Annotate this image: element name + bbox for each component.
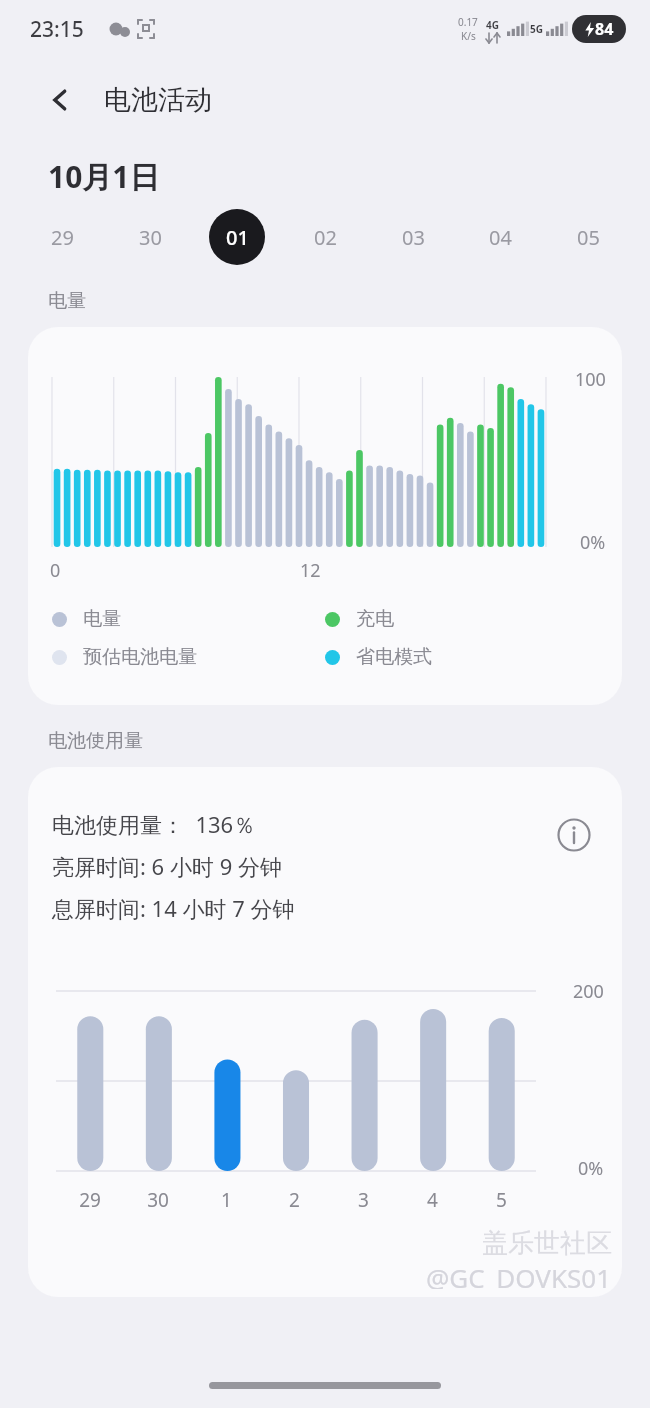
staticText: 01 xyxy=(226,224,249,251)
button[interactable]: 02 xyxy=(297,209,353,265)
button[interactable]: 信息 xyxy=(550,811,598,859)
staticText: 息屏时间: 14 小时 7 分钟 xyxy=(52,893,295,923)
staticText: 电池活动 xyxy=(104,83,212,117)
staticText: 充电 xyxy=(356,607,394,631)
staticText: 10月1日 xyxy=(48,156,160,197)
staticText: 04 xyxy=(489,224,512,251)
button[interactable]: 29 xyxy=(34,209,90,265)
staticText: 29 xyxy=(79,1187,101,1213)
button[interactable]: 05 xyxy=(560,209,616,265)
button[interactable]: 返回 xyxy=(34,74,86,126)
staticText: 0% xyxy=(578,1156,604,1181)
staticText: 预估电池电量 xyxy=(83,645,197,669)
staticText: 30 xyxy=(147,1187,169,1213)
staticText: 盖乐世社区 xyxy=(482,1227,612,1260)
button[interactable]: 01 xyxy=(209,209,265,265)
staticText: 05 xyxy=(577,224,600,251)
staticText: 5G xyxy=(530,22,543,36)
staticText: 03 xyxy=(402,224,425,251)
staticText: @GC_DOVKS01 xyxy=(426,1260,612,1289)
staticText: 电池使用量 xyxy=(48,729,143,753)
staticText: 30 xyxy=(139,224,162,251)
staticText: 0 xyxy=(50,558,61,583)
staticText: 电量 xyxy=(48,289,86,313)
staticText: 亮屏时间: 6 小时 9 分钟 xyxy=(52,851,282,881)
staticText: 0% xyxy=(580,530,606,555)
button[interactable]: 30 xyxy=(122,209,178,265)
staticText: 3 xyxy=(358,1187,369,1213)
button[interactable]: 电池使用量： 136％ xyxy=(28,767,622,1297)
staticText: K/s xyxy=(461,29,476,43)
staticText: 100 xyxy=(575,367,606,392)
button[interactable]: 04 xyxy=(472,209,528,265)
staticText: 02 xyxy=(314,224,337,251)
staticText: 84 xyxy=(595,18,614,40)
button[interactable]: 100 xyxy=(28,327,622,705)
staticText: 4 xyxy=(427,1187,438,1213)
staticText: 电池使用量： 136％ xyxy=(52,809,256,839)
staticText: 2 xyxy=(289,1187,300,1213)
staticText: 0.17 xyxy=(458,15,478,29)
staticText: 4G xyxy=(486,18,499,32)
button[interactable]: 03 xyxy=(385,209,441,265)
staticText: 5 xyxy=(496,1187,507,1213)
staticText: 电量 xyxy=(83,607,121,631)
staticText: 12 xyxy=(300,558,321,583)
staticText: 1 xyxy=(221,1187,232,1213)
staticText: 29 xyxy=(51,224,74,251)
staticText: 23:15 xyxy=(30,15,84,44)
staticText: 省电模式 xyxy=(356,645,432,669)
staticText: 200 xyxy=(573,979,604,1004)
